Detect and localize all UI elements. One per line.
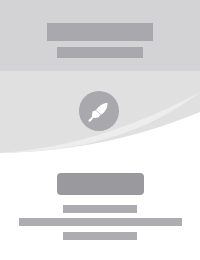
button[interactable]: Launch [79, 91, 119, 131]
button[interactable]: Get started [57, 173, 144, 195]
